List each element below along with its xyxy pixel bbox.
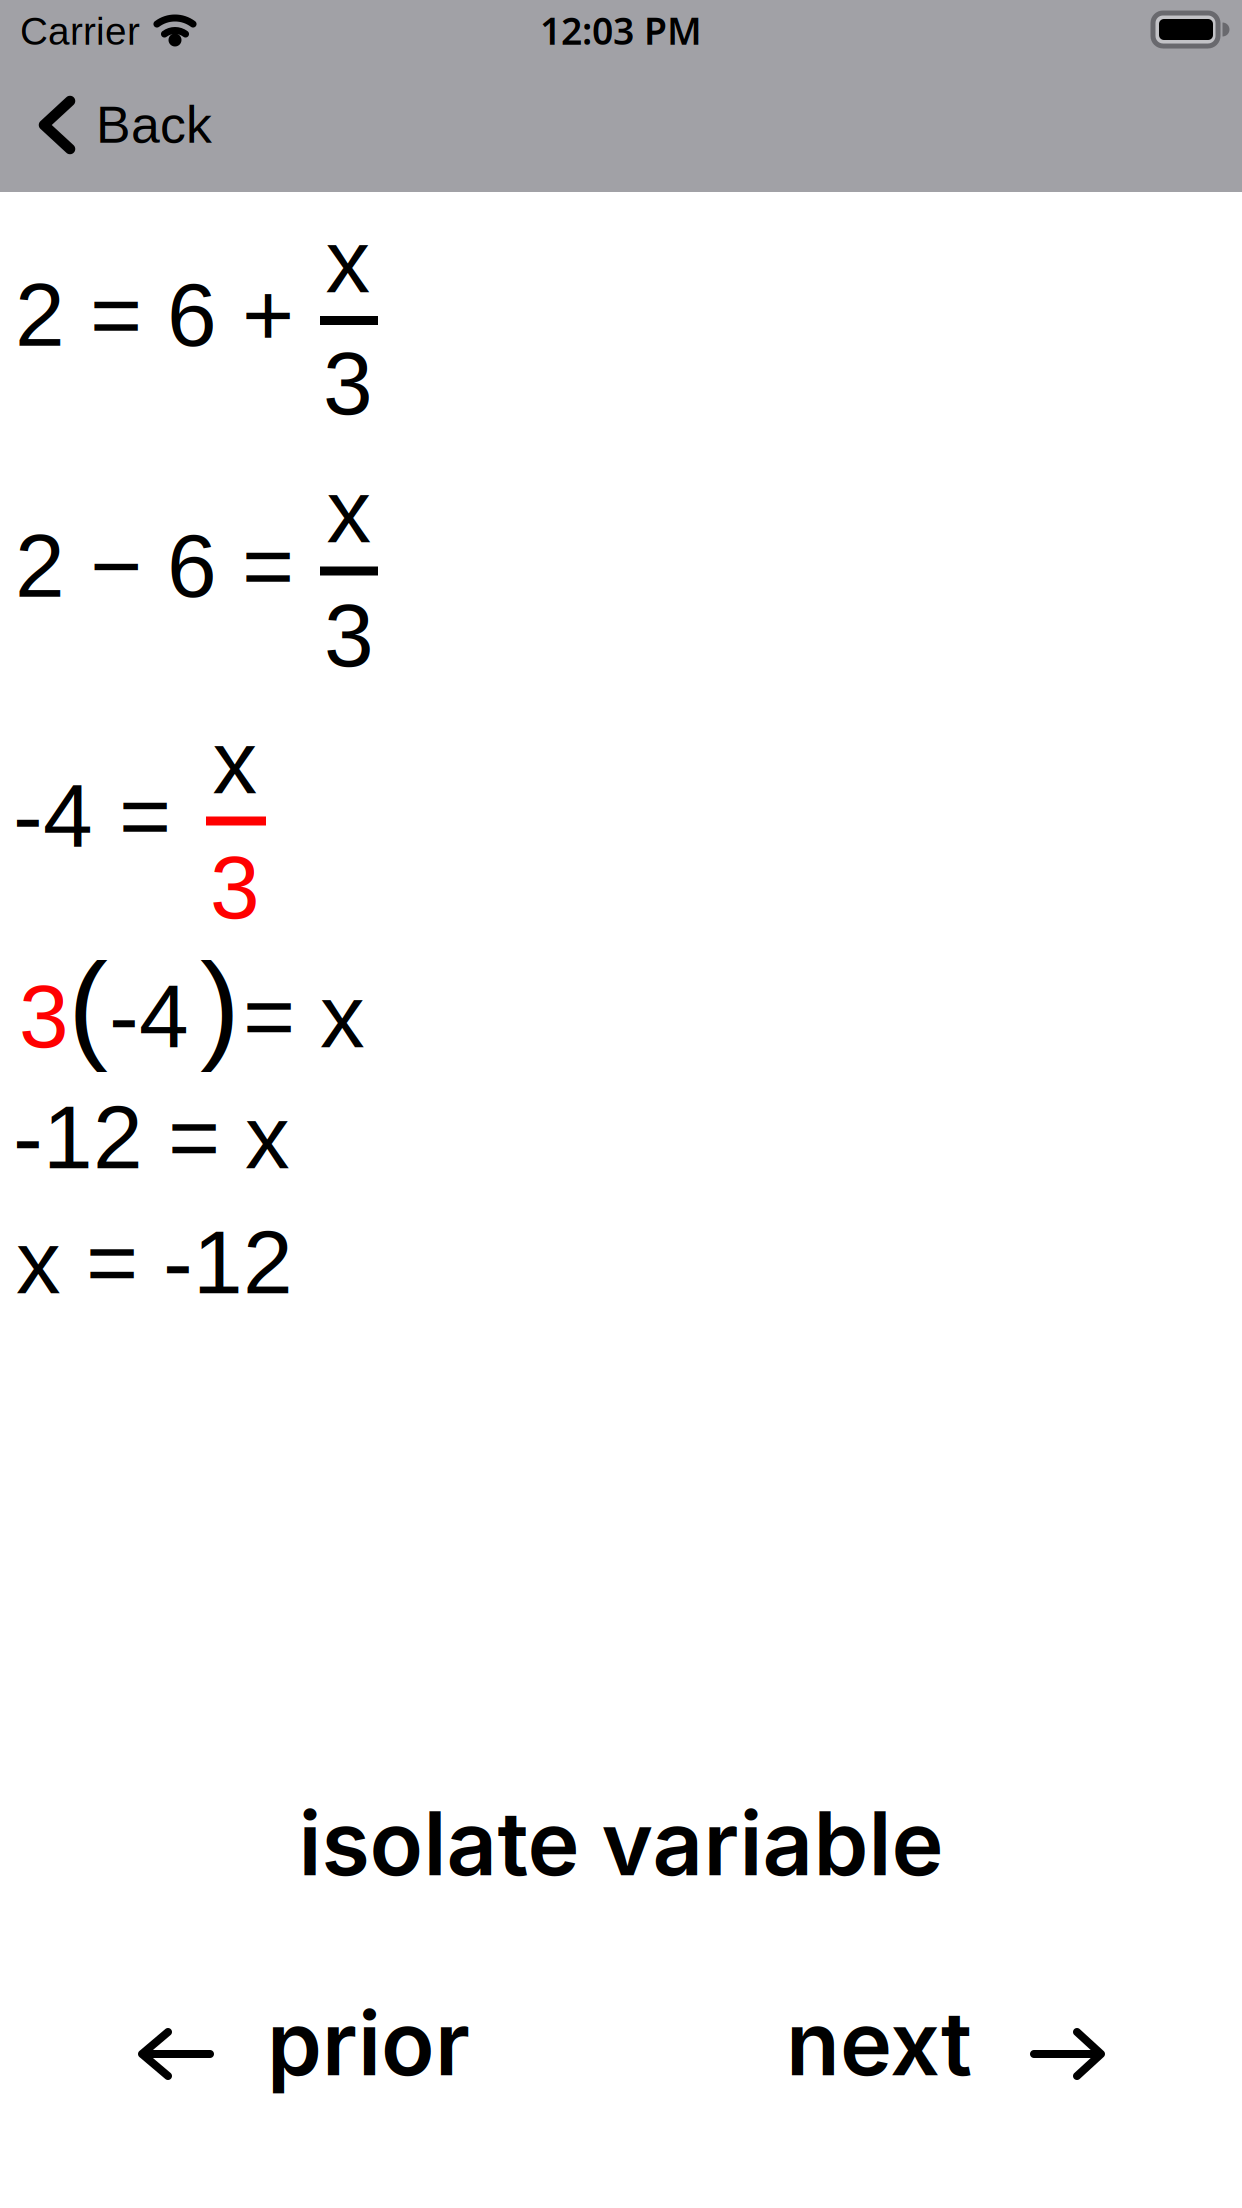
staticText: Back — [96, 96, 212, 154]
staticText: ( — [68, 938, 108, 1072]
button[interactable]: next — [786, 1982, 1108, 2100]
staticText: 12:03 PM — [540, 6, 702, 55]
staticText: x — [326, 461, 371, 561]
staticText: ) — [200, 938, 240, 1072]
button[interactable]: prior — [136, 1982, 470, 2100]
staticText: x — [325, 211, 370, 311]
staticText: isolate variable — [298, 1790, 943, 1896]
staticText: -4 — [13, 766, 93, 866]
staticText: 2 = 6 + — [15, 265, 294, 365]
staticText: Carrier — [20, 10, 140, 53]
staticText: prior — [267, 1990, 470, 2096]
staticText: -12 = x — [13, 1087, 290, 1187]
staticText: next — [786, 1990, 972, 2096]
staticText: x — [212, 712, 257, 812]
staticText: 3 — [323, 333, 373, 433]
staticText: 3 — [324, 585, 374, 685]
staticText: = x — [243, 966, 365, 1066]
staticText: 2 − 6 = — [15, 516, 294, 616]
staticText: -4 — [109, 966, 189, 1066]
button[interactable]: Back — [36, 85, 216, 165]
staticText: x = -12 — [16, 1212, 293, 1312]
staticText: 3 — [19, 966, 69, 1066]
staticText: 3 — [210, 837, 260, 937]
staticText: = — [119, 766, 171, 866]
